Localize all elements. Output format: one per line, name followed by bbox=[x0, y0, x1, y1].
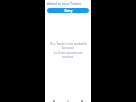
button[interactable]: Home bbox=[51, 99, 57, 102]
staticText: Added to Local Tweets bbox=[47, 2, 82, 6]
button[interactable]: Profile bbox=[79, 99, 85, 102]
staticText: This Tweet is not available because bbox=[49, 42, 87, 50]
button[interactable]: Retry bbox=[47, 8, 89, 13]
button[interactable]: Search bbox=[65, 99, 71, 102]
staticText: it's from a protected account. bbox=[49, 51, 87, 59]
staticText: Retry bbox=[64, 9, 73, 13]
button[interactable]: Added to Local Tweets bbox=[47, 2, 89, 6]
